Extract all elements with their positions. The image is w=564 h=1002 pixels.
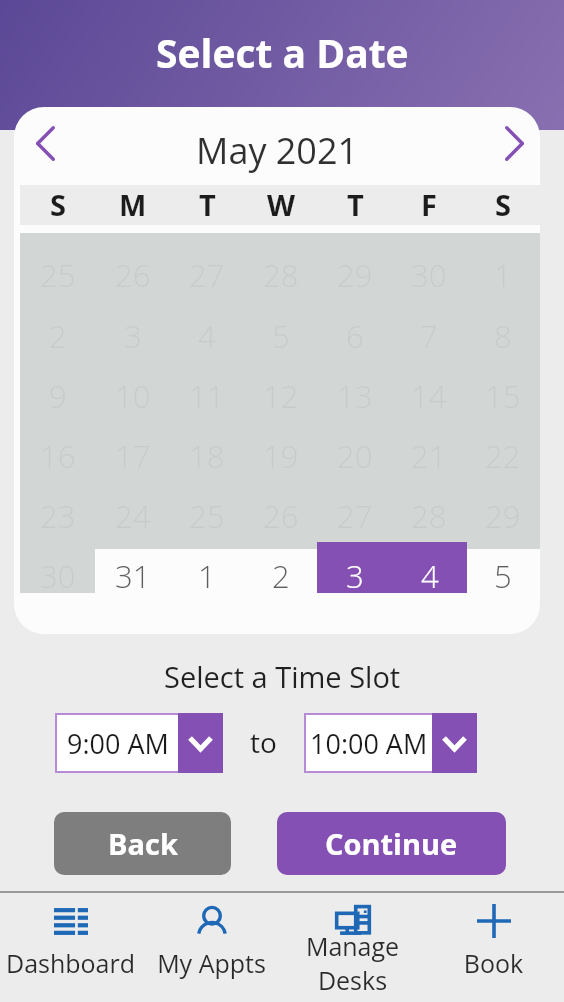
button[interactable]: Book [423,893,564,1002]
button[interactable]: 30 [20,535,95,595]
button[interactable]: Manage Desks [282,893,423,1002]
button[interactable]: 10:00 AM [304,713,477,773]
staticText: May 2021 [196,126,359,175]
button[interactable]: 1 [170,535,244,595]
button[interactable]: Back [54,812,231,875]
staticText: F [421,185,437,224]
staticText: Select a Time Slot [164,657,401,696]
button[interactable]: 31 [95,535,170,595]
button[interactable] [318,535,392,595]
staticText: T [199,185,216,224]
staticText: 1 [198,555,216,597]
button[interactable]: 9:00 AM [55,713,223,773]
button[interactable]: Next month [486,115,540,171]
button[interactable]: Dashboard [0,893,141,1002]
button[interactable]: My Appts [141,893,282,1002]
staticText: W [267,185,296,224]
button[interactable]: 2 [244,535,318,595]
staticText: Select a Date [156,26,409,79]
button[interactable] [392,535,466,595]
button[interactable]: 5 [466,535,540,595]
staticText: 2 [272,555,290,597]
staticText: 8 [494,315,512,357]
staticText: 5 [494,555,512,597]
staticText: 30 [40,555,76,597]
staticText: T [347,185,364,224]
button[interactable]: Previous month [17,115,73,171]
staticText: 4 [421,555,439,597]
staticText: M [119,185,147,224]
button[interactable]: 3 [317,542,467,593]
staticText: Manage Desks [282,929,423,997]
staticText: Back [108,824,178,863]
staticText: 10:00 AM [310,725,428,762]
staticText: 31 [115,555,151,597]
button[interactable]: Continue [277,812,506,875]
